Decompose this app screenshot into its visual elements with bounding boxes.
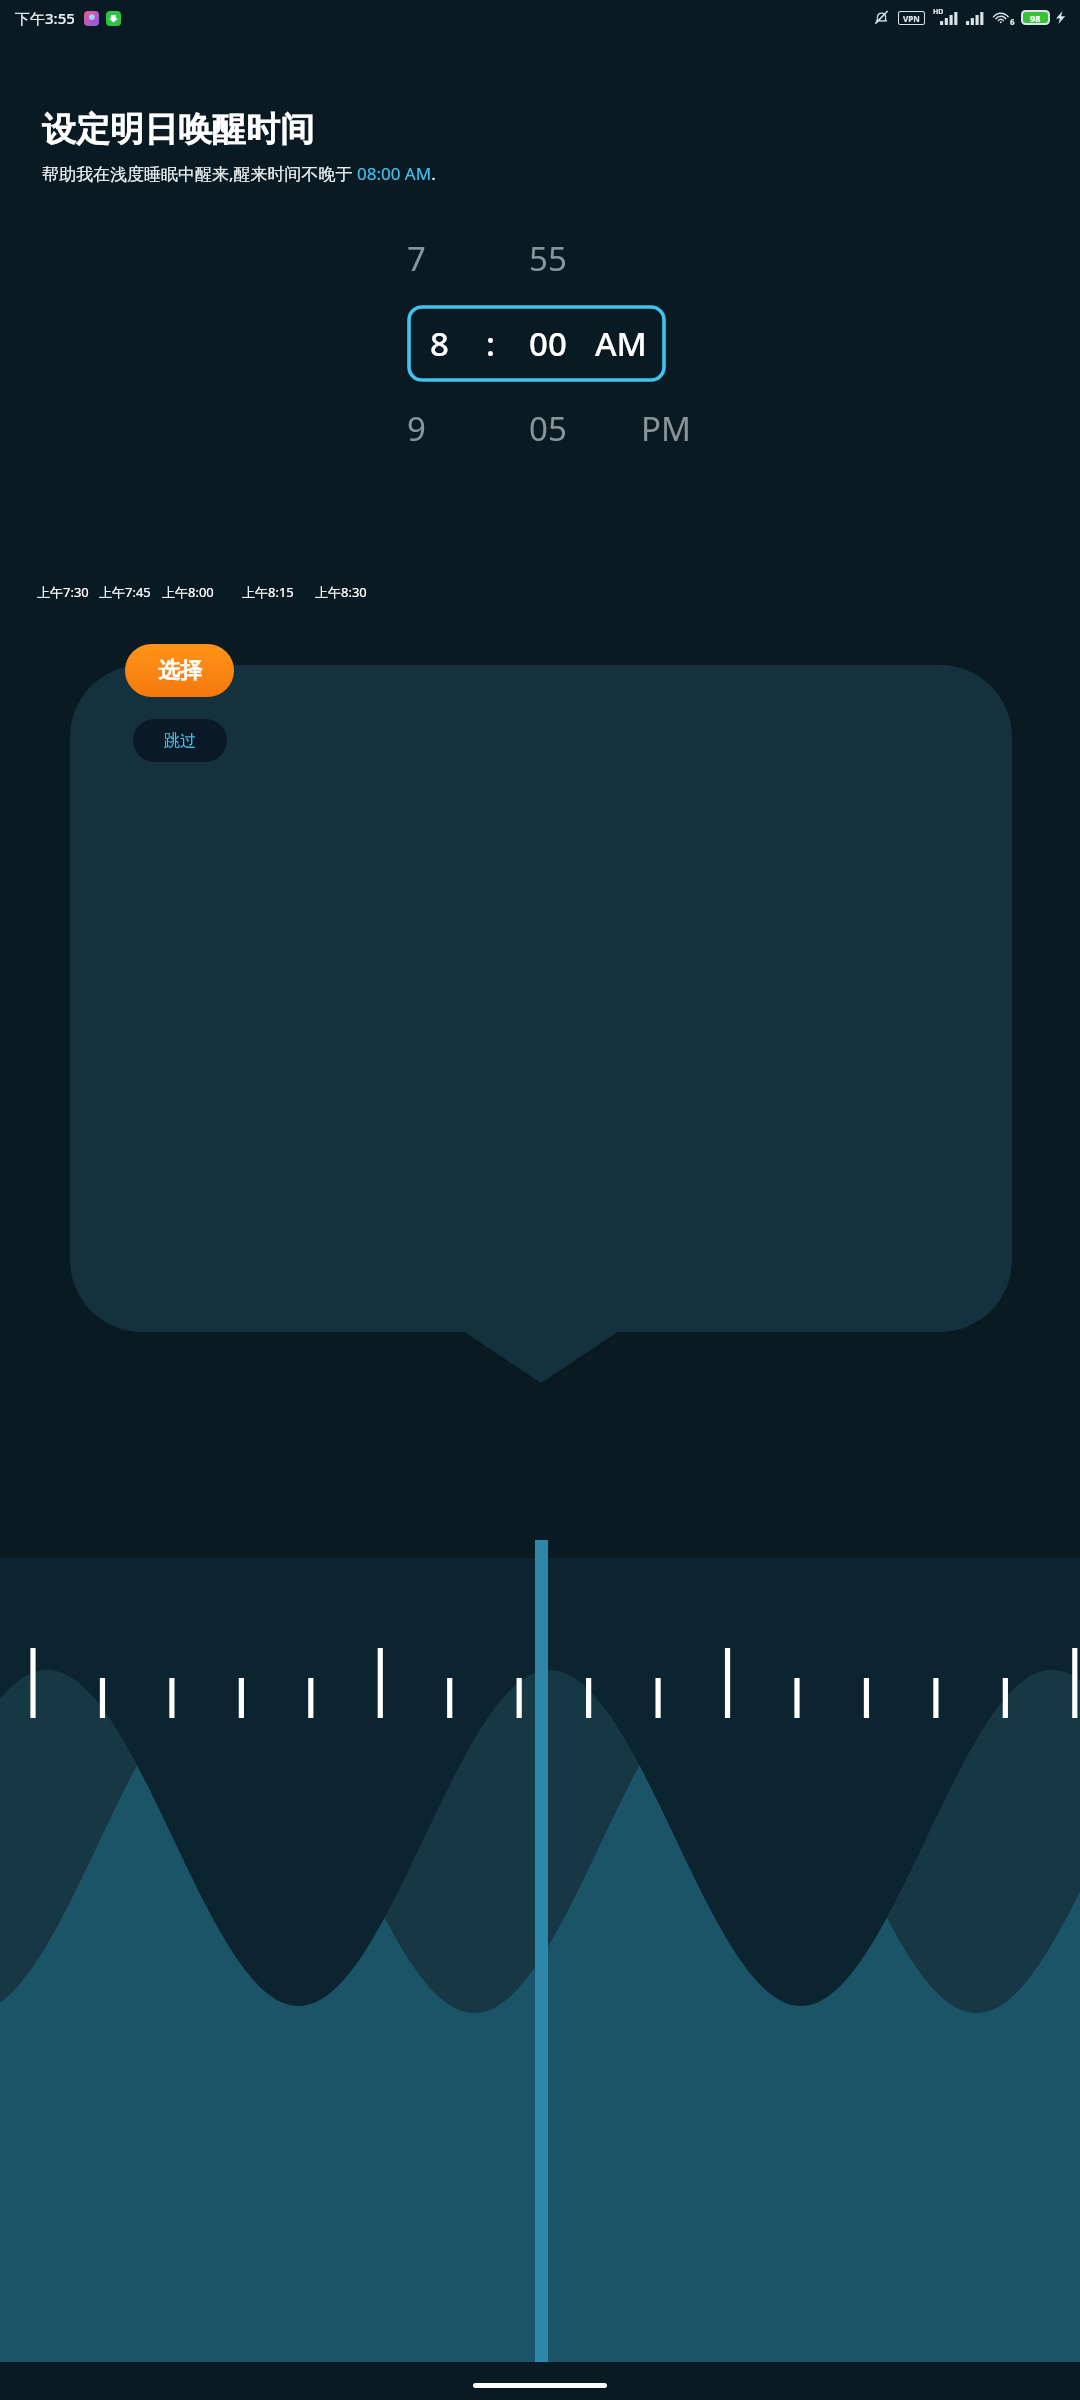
staticText: 上午8:15 (242, 583, 294, 601)
button[interactable]: 跳过 (133, 719, 227, 762)
staticText: 9 (407, 406, 426, 451)
staticText: 上午8:30 (315, 583, 367, 601)
staticText: 98 (1030, 12, 1041, 23)
staticText: AM (595, 321, 647, 366)
button[interactable]: 选择 (125, 644, 234, 697)
staticText: 7 (407, 236, 426, 281)
staticText: VPN (903, 13, 920, 24)
staticText: 帮助我在浅度睡眠中醒来,醒来时间不晚于 08:00 AM. (42, 162, 436, 185)
staticText: 上午7:45 (99, 583, 151, 601)
staticText: 上午7:30 (37, 583, 89, 601)
button[interactable]: 8 (407, 305, 666, 382)
staticText: 8 (430, 321, 449, 366)
staticText: 选择 (158, 657, 202, 685)
staticText: : (486, 321, 495, 366)
staticText: 00 (529, 321, 567, 366)
staticText: 55 (529, 236, 567, 281)
staticText: 05 (529, 406, 567, 451)
staticText: 上午8:00 (162, 583, 214, 601)
staticText: 下午3:55 (15, 8, 75, 28)
staticText: 设定明日唤醒时间 (42, 108, 314, 151)
staticText: 跳过 (164, 731, 196, 751)
staticText: HD (933, 7, 944, 17)
staticText: 6 (1010, 16, 1015, 27)
staticText: PM (641, 406, 691, 451)
